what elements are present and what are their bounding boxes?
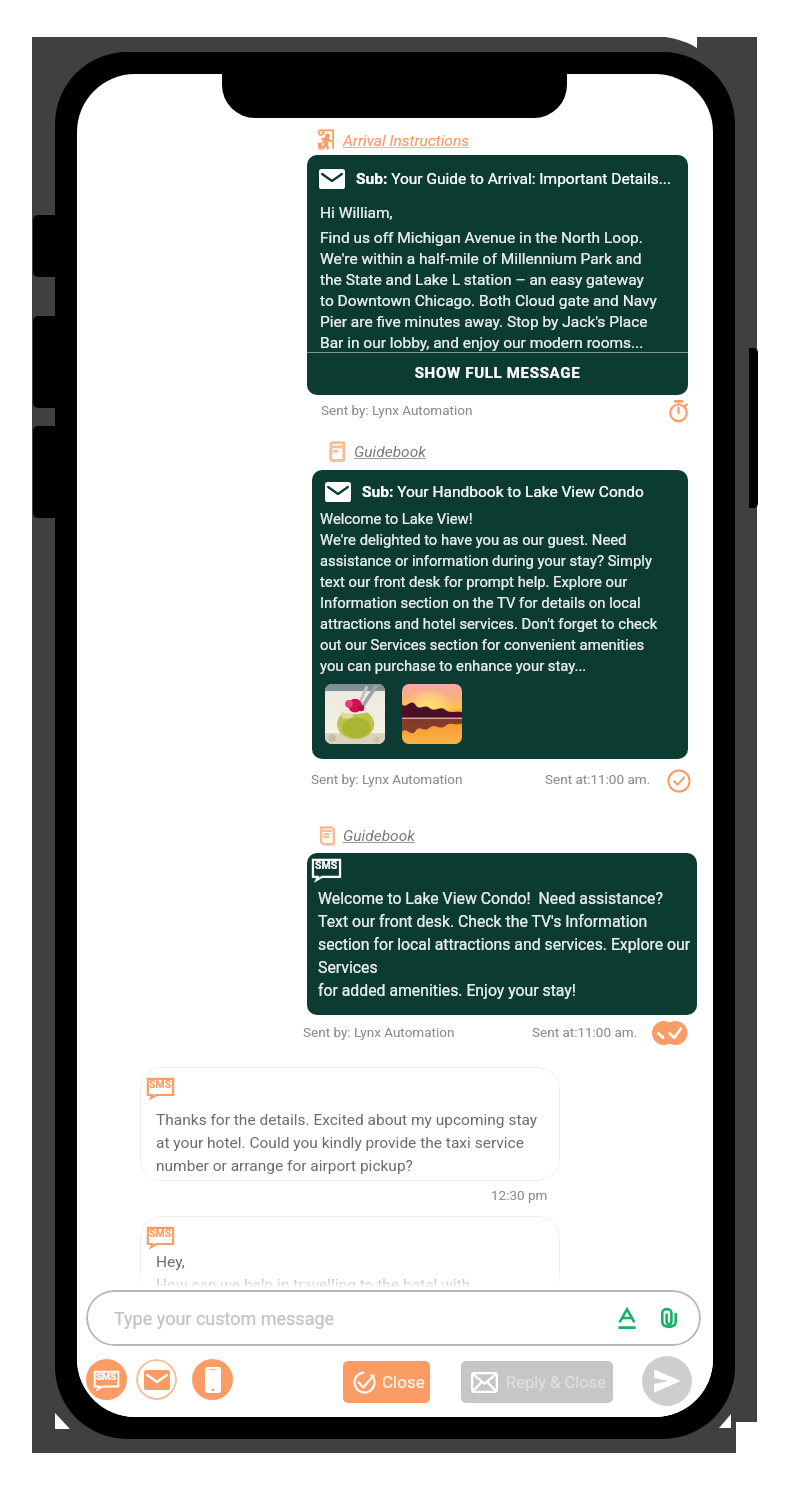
- staticText: your stay at the hotel?: [156, 1299, 308, 1317]
- staticText: section for local attractions and servic…: [318, 935, 690, 954]
- staticText: Services: [318, 958, 378, 977]
- button[interactable]: SMS: [307, 853, 697, 1015]
- staticText: Guidebook: [343, 827, 415, 845]
- button[interactable]: Reply & Close: [461, 1361, 613, 1403]
- button[interactable]: Guidebook: [327, 441, 426, 462]
- staticText: Text our front desk. Check the TV's Info…: [318, 912, 648, 931]
- staticText: Sub: Your Guide to Arrival: Important De…: [356, 170, 671, 188]
- staticText: Hi William,: [320, 204, 393, 222]
- staticText: text our front desk for prompt help. Exp…: [320, 573, 628, 590]
- button[interactable]: SMS: [140, 1216, 560, 1326]
- staticText: Welcome to Lake View!: [320, 510, 473, 527]
- staticText: SHOW FULL MESSAGE: [307, 364, 688, 382]
- button[interactable]: SMS: [86, 1359, 127, 1400]
- button[interactable]: Arrival Instructions: [313, 129, 469, 152]
- staticText: Welcome to Lake View Condo! Need assista…: [318, 889, 663, 908]
- staticText: Reply & Close: [506, 1373, 606, 1392]
- button[interactable]: Attach file: [657, 1306, 681, 1330]
- staticText: Bar in our lobby, and enjoy our modern r…: [320, 334, 644, 352]
- button[interactable]: Send: [642, 1356, 692, 1406]
- button[interactable]: Format text: [615, 1306, 639, 1330]
- button[interactable]: Guidebook: [317, 825, 415, 846]
- staticText: SMS: [315, 859, 338, 871]
- button[interactable]: Close: [343, 1361, 430, 1403]
- other: Pending: [667, 399, 690, 422]
- staticText: number or arrange for airport pickup?: [156, 1157, 413, 1175]
- staticText: you can purchase to enhance your stay...: [320, 657, 587, 674]
- staticText: Find us off Michigan Avenue in the North…: [320, 229, 643, 247]
- button[interactable]: Sub: Your Handbook to Lake View Condo: [312, 470, 688, 759]
- staticText: Sent by: Lynx Automation: [311, 771, 463, 787]
- staticText: Close: [382, 1372, 425, 1392]
- button[interactable]: Sub: Your Guide to Arrival: Important De…: [307, 155, 688, 395]
- other: Read: [652, 1021, 696, 1045]
- staticText: attractions and hotel services. Don't fo…: [320, 615, 658, 632]
- staticText: Sent at:11:00 am.: [532, 1024, 638, 1040]
- staticText: Sent by: Lynx Automation: [321, 402, 473, 418]
- staticText: Information section on the TV for detail…: [320, 594, 641, 611]
- staticText: Hey,: [156, 1253, 185, 1271]
- staticText: Thanks for the details. Excited about my…: [156, 1111, 538, 1129]
- other: Delivered: [667, 769, 691, 793]
- staticText: 12:30 pm: [491, 1187, 548, 1203]
- staticText: Sent by: Lynx Automation: [303, 1024, 455, 1040]
- staticText: How can we help in travelling to the hot…: [156, 1276, 471, 1294]
- staticText: We're within a half-mile of Millennium P…: [320, 250, 642, 268]
- staticText: Guidebook: [354, 443, 426, 461]
- staticText: Sent at:11:00 am.: [545, 771, 651, 787]
- staticText: Arrival Instructions: [343, 132, 469, 150]
- staticText: to Downtown Chicago. Both Cloud gate and…: [320, 292, 657, 310]
- staticText: the State and Lake L station – an easy g…: [320, 271, 644, 289]
- button[interactable]: SMS: [140, 1067, 560, 1181]
- staticText: Sub: Your Handbook to Lake View Condo: [362, 483, 644, 501]
- staticText: We're delighted to have you as our guest…: [320, 531, 627, 548]
- button[interactable]: Call: [192, 1359, 233, 1400]
- button[interactable]: Email: [136, 1359, 177, 1400]
- staticText: SMS: [149, 1227, 172, 1239]
- staticText: assistance or information during your st…: [320, 552, 652, 569]
- staticText: for added amenities. Enjoy your stay!: [318, 981, 576, 1000]
- staticText: SMS: [96, 1371, 117, 1382]
- staticText: Type your custom message: [114, 1308, 335, 1329]
- staticText: out our Services section for convenient …: [320, 636, 645, 653]
- staticText: at your hotel. Could you kindly provide …: [156, 1134, 524, 1152]
- button[interactable]: Type your custom message: [86, 1290, 701, 1346]
- staticText: SMS: [149, 1078, 172, 1090]
- staticText: Pier are five minutes away. Stop by Jack…: [320, 313, 648, 331]
